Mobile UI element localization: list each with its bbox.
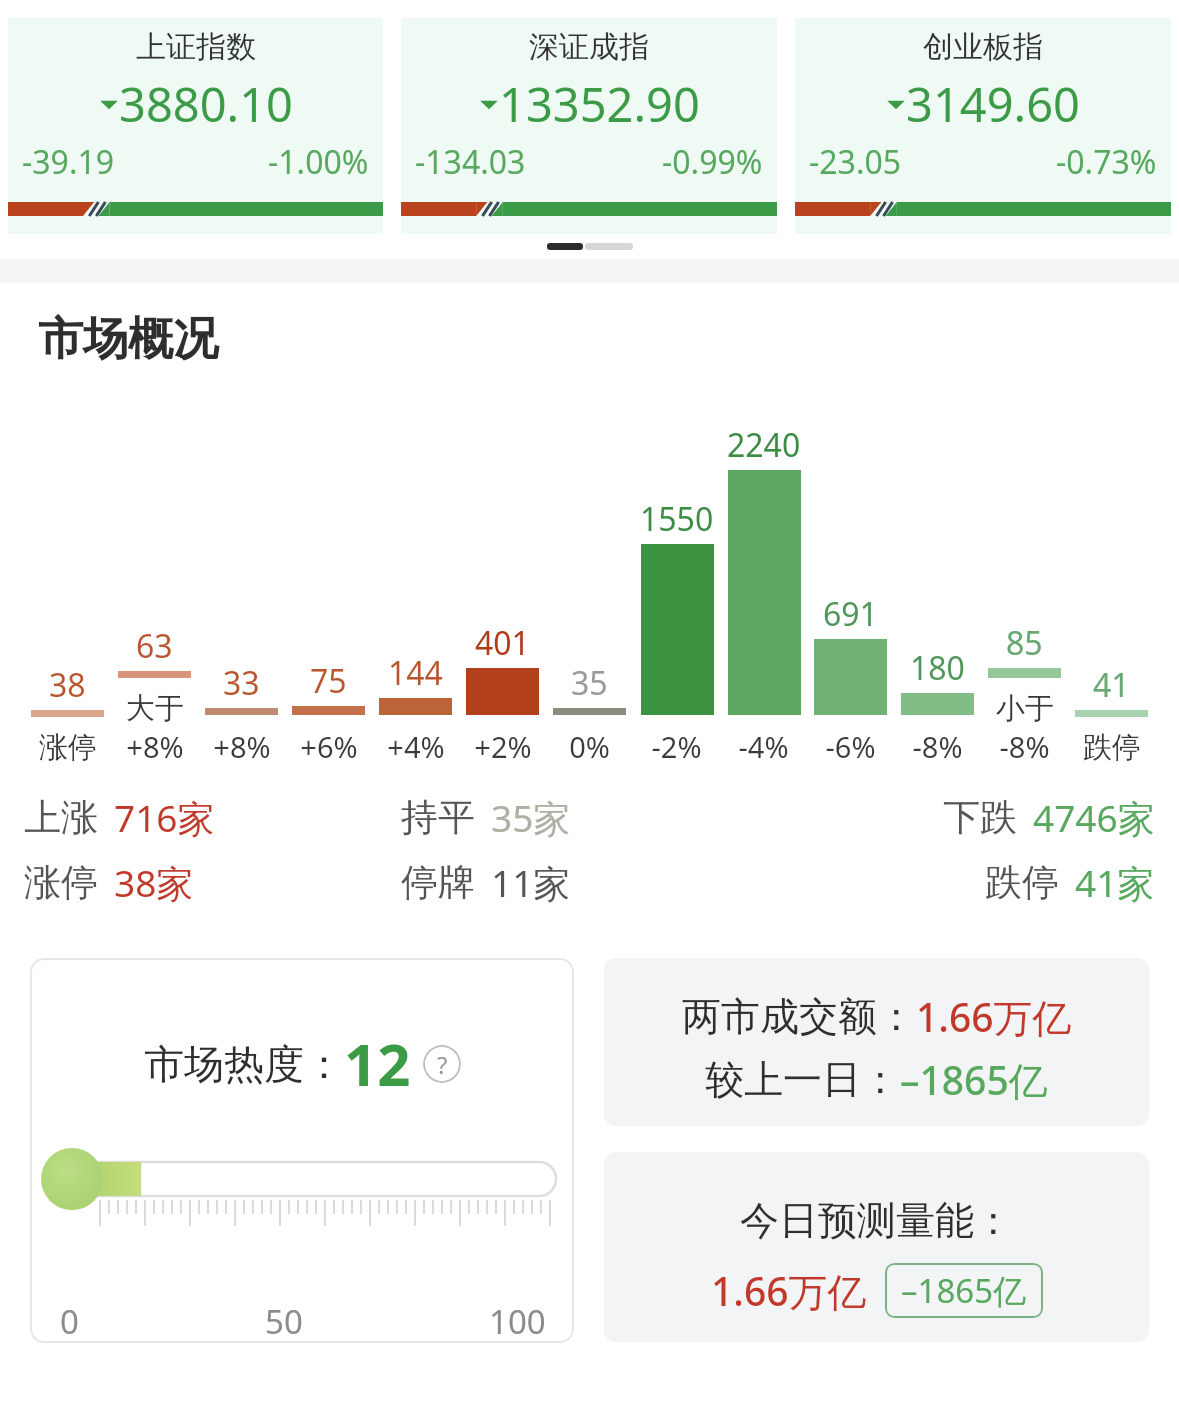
staticText: 持平 <box>401 794 475 841</box>
staticText: +4% <box>387 727 445 766</box>
staticText: +8% <box>126 727 184 766</box>
staticText: -0.73% <box>1056 140 1157 184</box>
button[interactable]: 144 <box>372 415 459 766</box>
staticText: -2% <box>651 727 702 766</box>
button[interactable]: 上证指数 <box>8 18 383 234</box>
staticText: 两市成交额： <box>682 992 916 1041</box>
staticText: 上涨 <box>24 794 98 841</box>
staticText: 85 <box>1006 621 1043 665</box>
staticText: 100 <box>489 1299 546 1343</box>
staticText: 35家 <box>491 792 571 843</box>
staticText: 创业板指 <box>923 28 1043 66</box>
staticText: 小于 <box>996 690 1054 727</box>
staticText: 跌停 <box>1083 729 1141 766</box>
button[interactable]: 2240 <box>720 415 807 766</box>
staticText: -6% <box>825 727 876 766</box>
staticText: -4% <box>738 727 789 766</box>
button[interactable]: 说明 <box>423 1045 461 1083</box>
button[interactable]: 创业板指 <box>795 18 1171 234</box>
button[interactable]: 1550 <box>633 415 720 766</box>
staticText: 401 <box>475 621 530 665</box>
staticText: 1.66万亿 <box>711 1264 867 1317</box>
staticText: 35 <box>571 661 608 705</box>
staticText: 11家 <box>491 857 571 908</box>
button[interactable]: 市场热度： <box>30 958 574 1343</box>
staticText: +8% <box>213 727 271 766</box>
staticText: 41 <box>1093 663 1130 707</box>
staticText: 4746家 <box>1033 792 1155 843</box>
staticText: –1865亿 <box>901 1268 1027 1313</box>
staticText: 上证指数 <box>136 28 256 66</box>
staticText: 下跌 <box>943 794 1017 841</box>
staticText: 41家 <box>1075 857 1155 908</box>
button[interactable]: 691 <box>807 415 894 766</box>
button[interactable]: 180 <box>894 415 981 766</box>
button[interactable]: 两市成交额： <box>604 958 1149 1126</box>
button[interactable]: 33 <box>198 415 285 766</box>
staticText: -0.99% <box>662 140 763 184</box>
button[interactable]: 63 <box>111 378 198 766</box>
staticText: 1.66万亿 <box>916 990 1072 1043</box>
staticText: 涨停 <box>39 729 97 766</box>
staticText: 深证成指 <box>529 28 649 66</box>
staticText: 13352.90 <box>499 72 700 136</box>
button[interactable]: 41 <box>1068 417 1155 766</box>
staticText: 0% <box>569 727 610 766</box>
staticText: 3880.10 <box>119 72 293 136</box>
staticText: 38家 <box>114 857 194 908</box>
button[interactable]: 深证成指 <box>401 18 777 234</box>
staticText: 33 <box>223 661 260 705</box>
button[interactable]: 401 <box>459 415 546 766</box>
staticText: 716家 <box>114 792 215 843</box>
staticText: 75 <box>310 659 347 703</box>
staticText: 691 <box>823 592 878 636</box>
staticText: 12 <box>344 1024 411 1103</box>
staticText: ? <box>437 1048 448 1081</box>
staticText: 市场概况 <box>38 311 218 368</box>
staticText: –1865亿 <box>900 1053 1048 1106</box>
staticText: -8% <box>912 727 963 766</box>
button[interactable]: 85 <box>981 378 1068 766</box>
staticText: 大于 <box>126 690 184 727</box>
staticText: 50 <box>265 1299 303 1343</box>
staticText: 0 <box>60 1299 79 1343</box>
staticText: -134.03 <box>415 140 526 184</box>
staticText: 市场热度： <box>144 1039 344 1089</box>
staticText: 1550 <box>640 497 714 541</box>
button[interactable]: 35 <box>546 415 633 766</box>
button[interactable]: 75 <box>285 415 372 766</box>
staticText: +6% <box>300 727 358 766</box>
staticText: 停牌 <box>401 859 475 906</box>
staticText: 3149.60 <box>906 72 1080 136</box>
staticText: 涨停 <box>24 859 98 906</box>
staticText: 144 <box>388 651 443 695</box>
staticText: 较上一日： <box>705 1055 900 1104</box>
button[interactable]: 今日预测量能： <box>604 1152 1149 1342</box>
staticText: 63 <box>136 624 173 668</box>
staticText: -1.00% <box>268 140 369 184</box>
staticText: -8% <box>999 727 1050 766</box>
staticText: 38 <box>49 663 86 707</box>
staticText: 今日预测量能： <box>740 1196 1013 1245</box>
staticText: -39.19 <box>22 140 115 184</box>
staticText: 2240 <box>727 423 801 467</box>
staticText: +2% <box>474 727 532 766</box>
staticText: 跌停 <box>985 859 1059 906</box>
staticText: -23.05 <box>809 140 902 184</box>
staticText: 180 <box>910 646 965 690</box>
button[interactable]: 38 <box>24 417 111 766</box>
